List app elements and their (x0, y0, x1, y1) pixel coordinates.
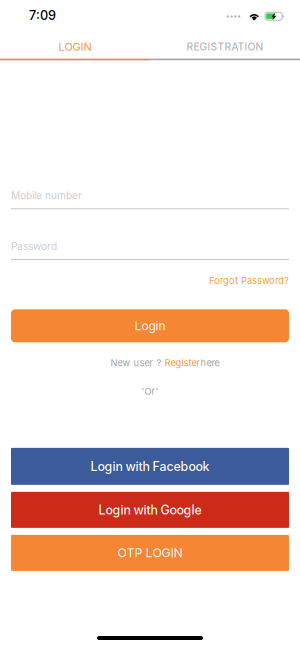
staticText: Mobile number (11, 189, 82, 202)
staticText: here (200, 357, 219, 369)
staticText: LOGIN (58, 40, 91, 53)
staticText: 'Or' (141, 386, 158, 397)
button[interactable]: Login with Google (11, 492, 289, 528)
staticText: New user ? (110, 357, 164, 369)
button[interactable]: OTP LOGIN (11, 535, 289, 571)
staticText: OTP LOGIN (117, 545, 182, 560)
staticText: REGISTRATION (186, 40, 263, 53)
staticText: Login (134, 319, 165, 333)
staticText: Forgot Password? (209, 275, 289, 286)
button[interactable]: Forgot Password? (11, 275, 289, 286)
button[interactable]: LOGIN (0, 31, 150, 58)
button[interactable]: Login (11, 309, 289, 342)
button[interactable]: REGISTRATION (150, 31, 300, 58)
staticText: Login with Google (98, 502, 201, 517)
staticText: 7:09 (29, 8, 56, 23)
button[interactable]: Register (164, 357, 200, 369)
staticText: Login with Facebook (90, 459, 209, 474)
staticText: Password (11, 240, 57, 253)
button[interactable]: Login with Facebook (11, 448, 289, 485)
staticText: Register (164, 357, 200, 369)
